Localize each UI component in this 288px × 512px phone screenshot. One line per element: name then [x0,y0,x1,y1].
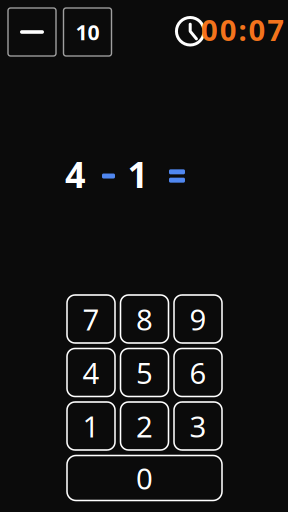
staticText: 1 [82,406,99,445]
staticText: 0 [136,458,153,497]
button[interactable]: 7 [67,295,115,343]
staticText: 6 [189,353,206,392]
button[interactable]: Time remaining 00:07 [170,0,288,62]
staticText: 4 [82,353,99,392]
button[interactable]: 10 [63,8,111,56]
button[interactable]: 4 [67,348,115,396]
staticText: 00:07 [201,10,284,49]
staticText: 8 [136,299,153,338]
staticText: 10 [75,18,99,46]
staticText: 5 [136,353,153,392]
staticText: 9 [189,299,206,338]
button[interactable]: 6 [174,348,222,396]
staticText: 7 [82,299,99,338]
button[interactable]: 1 [67,402,115,450]
staticText: 1 [127,150,148,198]
staticText: 4 [65,150,86,198]
button[interactable]: 8 [120,295,168,343]
button[interactable]: Subtraction mode [8,8,56,56]
button[interactable]: 3 [174,402,222,450]
button[interactable]: 5 [120,348,168,396]
staticText: 2 [136,406,153,445]
button[interactable]: 9 [174,295,222,343]
button[interactable]: 2 [120,402,168,450]
button[interactable]: 0 [67,455,222,500]
staticText: 3 [189,406,206,445]
